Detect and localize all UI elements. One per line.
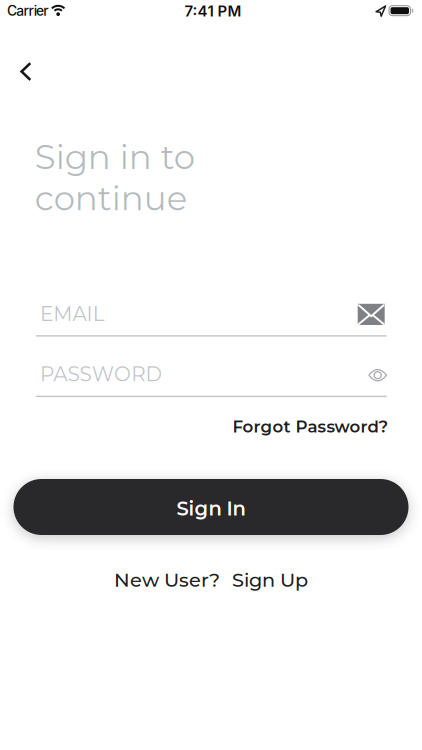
- staticText: Sign Up: [232, 568, 308, 591]
- button[interactable]: Forgot Password?: [232, 412, 388, 441]
- staticText: Forgot Password?: [232, 416, 388, 437]
- button[interactable]: Sign In: [13, 479, 408, 535]
- staticText: Sign In: [176, 497, 245, 520]
- button[interactable]: Sign Up: [232, 568, 308, 591]
- staticText: Carrier: [7, 2, 48, 19]
- staticText: Sign in to continue: [35, 136, 195, 219]
- button[interactable]: Show password: [363, 364, 392, 386]
- staticText: New User?: [114, 568, 220, 591]
- staticText: 7:41 PM: [184, 2, 241, 20]
- button[interactable]: Back: [0, 50, 45, 91]
- staticText: PASSWORD: [40, 362, 162, 386]
- staticText: EMAIL: [40, 302, 105, 326]
